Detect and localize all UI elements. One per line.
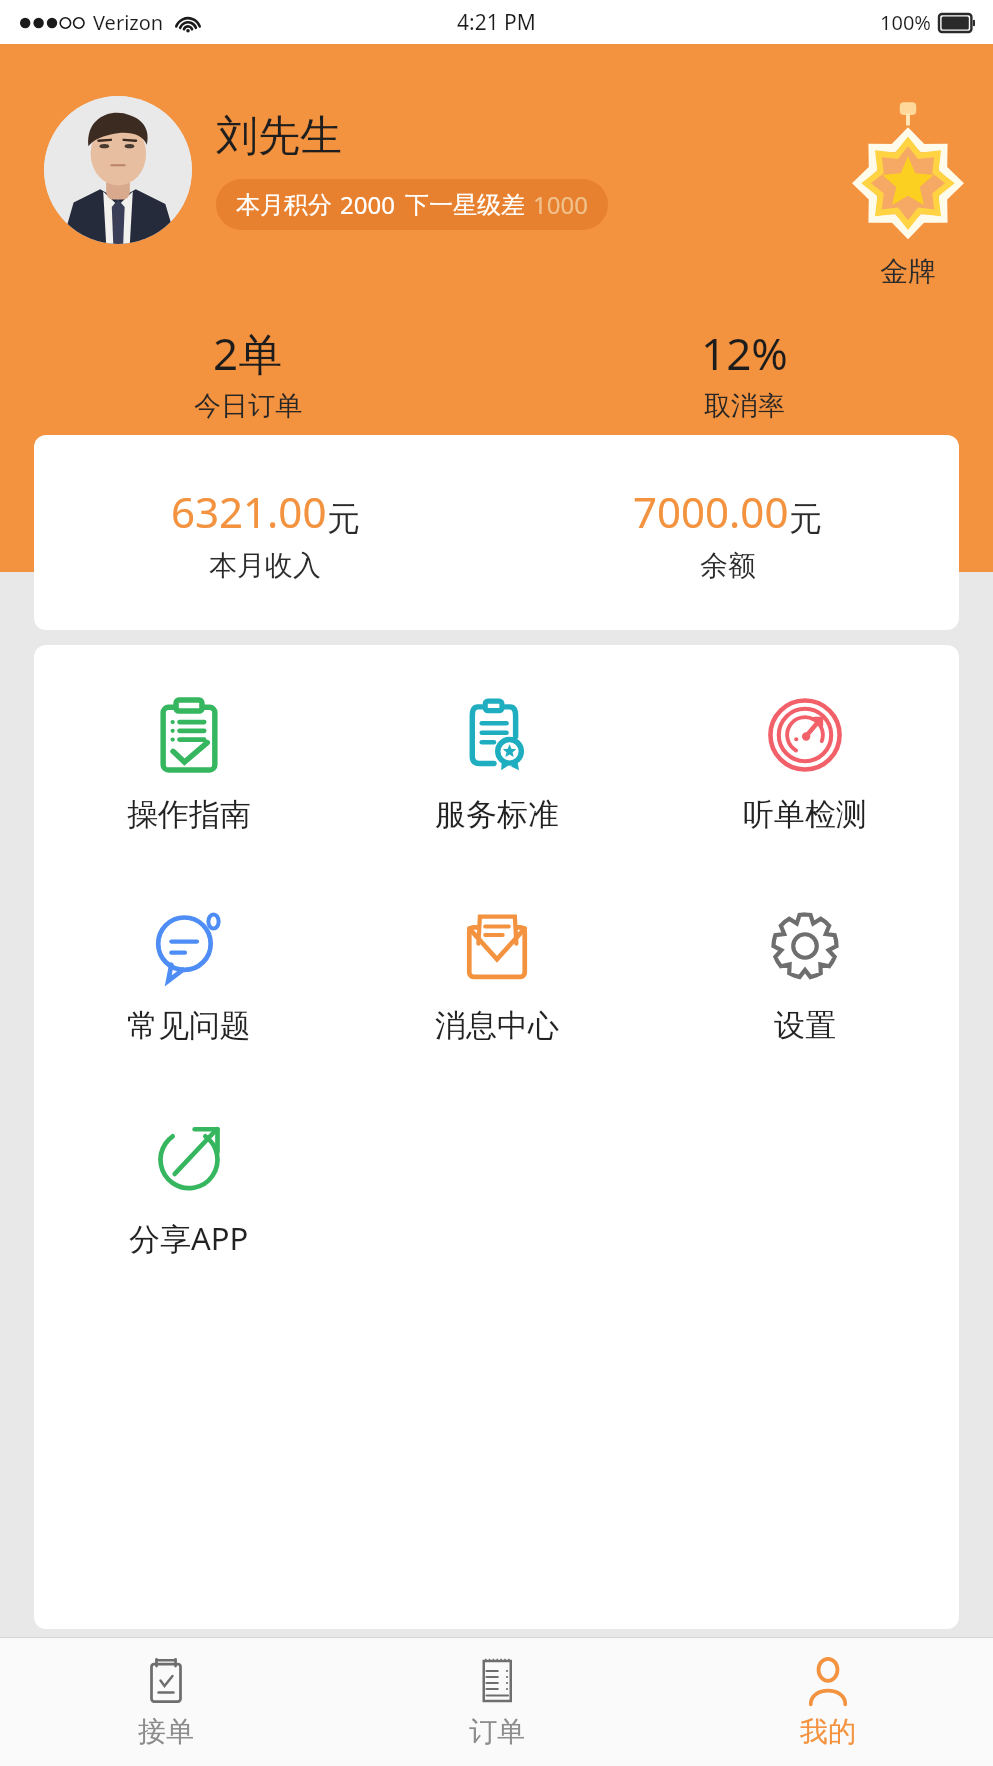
button[interactable]: 我的 [662, 1638, 993, 1766]
staticText: 4:21 PM [457, 8, 536, 37]
staticText: 1000 [533, 188, 588, 221]
staticText: 分享APP [129, 1217, 249, 1259]
button[interactable]: 12% [496, 323, 993, 423]
button[interactable]: 操作指南 [34, 693, 343, 838]
button[interactable]: 服务标准 [343, 693, 651, 838]
staticText: 服务标准 [435, 795, 559, 834]
staticText: 设置 [774, 1006, 836, 1045]
staticText: Verizon [93, 9, 164, 36]
button[interactable]: 接单 [0, 1638, 331, 1766]
staticText: 接单 [138, 1714, 194, 1749]
staticText: 本月收入 [209, 548, 321, 583]
staticText: 下一星级差 [405, 190, 525, 220]
staticText: 余额 [700, 548, 756, 583]
staticText: 2单 [213, 323, 283, 383]
staticText: 消息中心 [435, 1006, 559, 1045]
staticText: 听单检测 [743, 795, 867, 834]
staticText: 金牌 [880, 254, 936, 289]
staticText: 2000 [340, 188, 395, 221]
staticText: 订单 [469, 1714, 525, 1749]
button[interactable]: 2单 [0, 323, 496, 423]
staticText: 刘先生 [216, 110, 342, 163]
staticText: 操作指南 [127, 795, 251, 834]
staticText: 100% [880, 9, 931, 36]
button[interactable]: 分享APP [34, 1115, 343, 1263]
staticText: 7000.00 [633, 483, 789, 540]
staticText: 取消率 [704, 389, 785, 423]
staticText: 12% [701, 323, 788, 383]
button[interactable]: 消息中心 [343, 904, 651, 1049]
button[interactable]: 常见问题 [34, 904, 343, 1049]
button[interactable]: 7000.00 [496, 483, 959, 583]
staticText: 6321.00 [171, 483, 327, 540]
button[interactable]: Profile photo [44, 96, 192, 244]
staticText: 我的 [800, 1714, 856, 1749]
button[interactable]: 设置 [651, 904, 959, 1049]
button[interactable]: 金牌 Gold medal [853, 100, 963, 289]
button[interactable]: 订单 [331, 1638, 662, 1766]
staticText: 常见问题 [127, 1006, 251, 1045]
staticText: 元 [327, 498, 360, 540]
staticText: 本月积分 [236, 190, 332, 220]
button[interactable]: 听单检测 [651, 693, 959, 838]
button[interactable]: 6321.00 [34, 483, 496, 583]
staticText: 今日订单 [194, 389, 302, 423]
button[interactable]: 本月积分 [216, 179, 608, 230]
staticText: 元 [789, 498, 822, 540]
